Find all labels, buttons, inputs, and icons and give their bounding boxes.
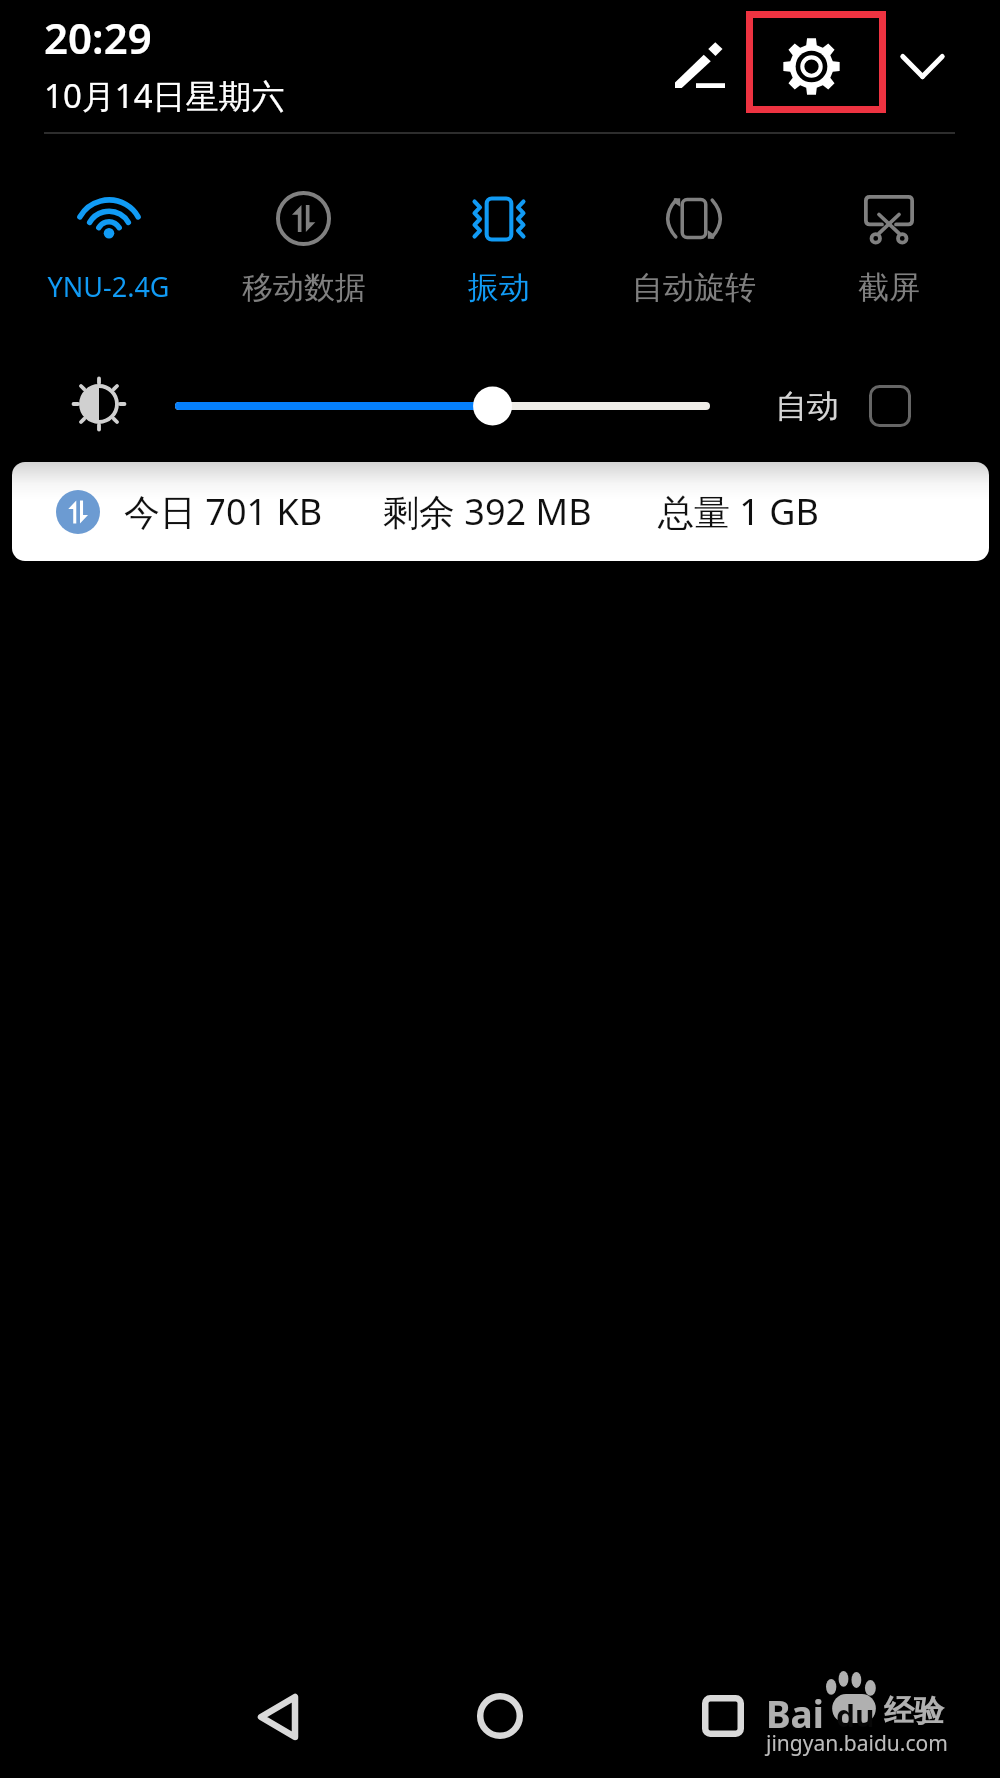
staticText: 振动 [468,268,530,307]
button[interactable]: Brightness [174,382,711,430]
staticText: 剩余 392 MB [383,487,592,536]
staticText: 10月14日星期六 [44,73,285,118]
staticText: du [836,1695,875,1736]
button[interactable]: 自动 [775,380,911,432]
staticText: 今日 701 KB [124,487,323,536]
button[interactable]: Edit [660,28,740,100]
button[interactable]: Brightness level [60,368,138,440]
staticText: 截屏 [858,268,920,307]
button[interactable]: Recents [693,1686,753,1746]
button[interactable]: 今日 701 KB [12,462,989,561]
staticText: 自动 [775,386,839,426]
staticText: 移动数据 [242,268,366,307]
button[interactable]: 截屏 [791,152,986,302]
staticText: 经验 [884,1692,944,1730]
button[interactable]: Back [248,1687,308,1747]
button[interactable]: 移动数据 [206,152,401,302]
staticText: YNU-2.4G [47,268,170,305]
button[interactable]: Home [470,1686,530,1746]
staticText: Bai [766,1688,824,1738]
button[interactable]: 自动旋转 [596,152,791,302]
staticText: 20:29 [44,9,152,66]
staticText: 自动旋转 [632,268,756,307]
button[interactable]: Collapse [890,34,954,98]
staticText: 总量 1 GB [658,487,819,536]
button[interactable]: Settings [746,11,886,113]
button[interactable]: YNU-2.4G [11,152,206,302]
button[interactable]: 振动 [401,152,596,302]
staticText: jingyan.baidu.com [766,1729,948,1758]
